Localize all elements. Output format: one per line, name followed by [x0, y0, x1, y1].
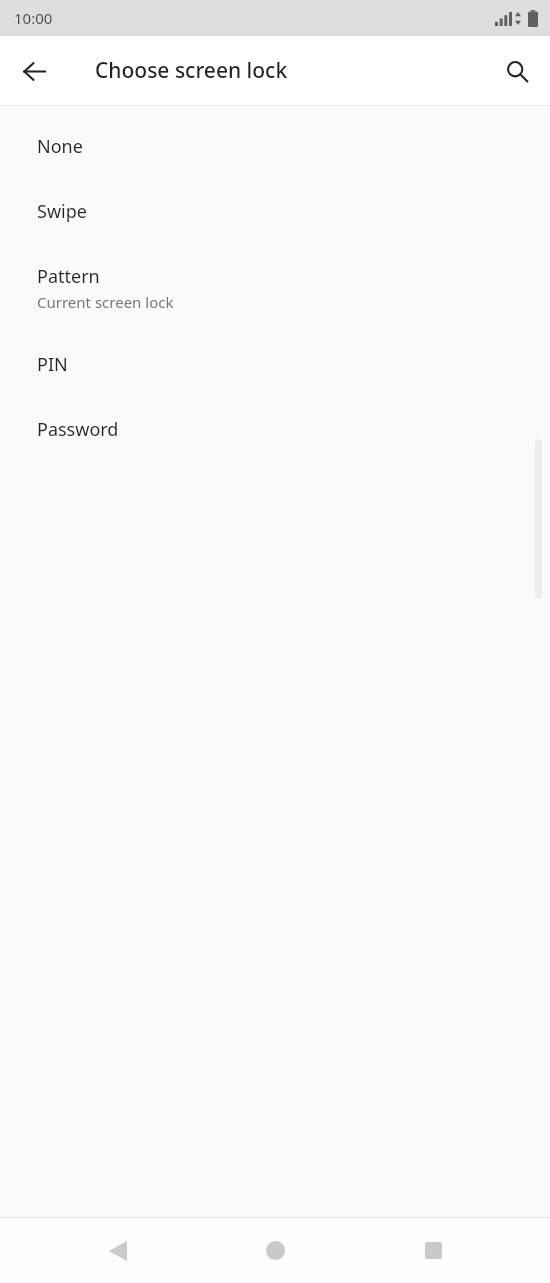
- button[interactable]: Back: [10, 47, 58, 95]
- staticText: 10:00: [14, 8, 53, 28]
- staticText: Current screen lock: [37, 292, 174, 312]
- button[interactable]: Swipe: [0, 179, 550, 244]
- staticText: Choose screen lock: [95, 56, 288, 85]
- staticText: Pattern: [37, 264, 100, 289]
- button[interactable]: Pattern: [0, 244, 550, 332]
- button[interactable]: Recent apps: [393, 1218, 473, 1283]
- button[interactable]: Home: [235, 1218, 315, 1283]
- staticText: None: [37, 134, 83, 159]
- staticText: Swipe: [37, 199, 87, 224]
- button[interactable]: Back: [78, 1218, 158, 1283]
- button[interactable]: None: [0, 114, 550, 179]
- staticText: Password: [37, 417, 119, 442]
- button[interactable]: Password: [0, 397, 550, 462]
- staticText: PIN: [37, 352, 68, 377]
- button[interactable]: PIN: [0, 332, 550, 397]
- button[interactable]: Search: [493, 47, 541, 95]
